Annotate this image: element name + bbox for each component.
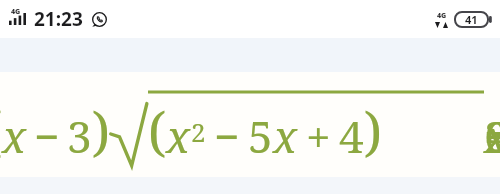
staticText: + [306, 106, 331, 166]
button[interactable]: ( [0, 72, 500, 177]
staticText: 41 [465, 12, 478, 27]
staticText: 3 [67, 106, 92, 166]
other: WhatsApp notification [92, 12, 107, 27]
staticText: − [34, 106, 60, 166]
staticText: 4 [339, 106, 364, 166]
staticText: 4G [11, 7, 21, 17]
staticText: ( [0, 95, 2, 166]
staticText: 5 [248, 106, 273, 166]
staticText: x [2, 106, 27, 166]
staticText: ) [364, 95, 382, 166]
staticText: x [273, 106, 298, 166]
staticText: 4G [437, 11, 447, 21]
staticText: ) [92, 95, 110, 166]
staticText: ( [148, 95, 166, 166]
staticText: 2 [191, 114, 206, 149]
staticText: x [166, 106, 191, 166]
staticText: 21:23 [34, 6, 83, 32]
staticText: − [214, 106, 240, 166]
